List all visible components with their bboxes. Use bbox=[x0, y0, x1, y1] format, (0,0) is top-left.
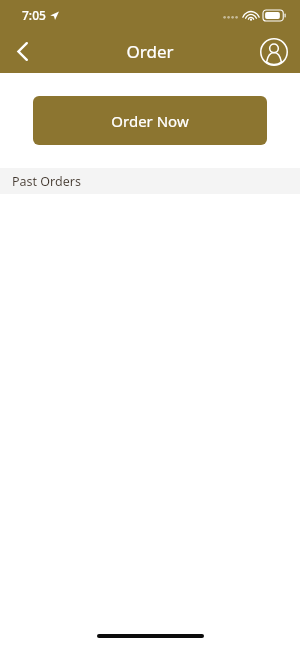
staticText: Order bbox=[126, 40, 174, 63]
staticText: Past Orders bbox=[12, 173, 81, 190]
button[interactable]: Back bbox=[0, 30, 44, 73]
button[interactable]: Profile bbox=[256, 34, 292, 70]
staticText: 7:05 bbox=[22, 7, 46, 23]
staticText: Order Now bbox=[111, 111, 189, 131]
button[interactable]: Order Now bbox=[33, 96, 267, 145]
